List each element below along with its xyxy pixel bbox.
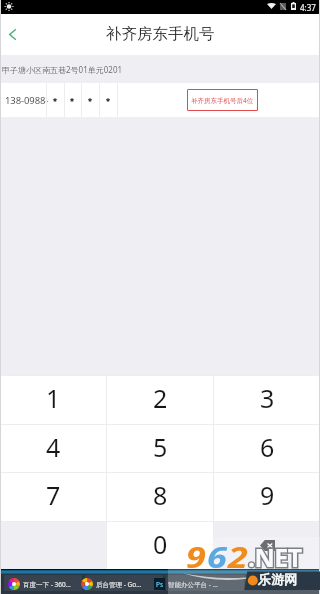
button[interactable]: 4 — [0, 425, 106, 472]
button[interactable]: 7 — [0, 473, 106, 521]
staticText: 8 — [153, 478, 168, 512]
staticText: 9 — [186, 538, 206, 576]
button[interactable]: 8 — [107, 473, 213, 521]
button[interactable]: 9 — [214, 473, 320, 521]
button[interactable]: Back — [0, 14, 32, 55]
staticText: 9 — [260, 478, 275, 512]
staticText: .NET — [248, 540, 302, 574]
staticText: 4 — [46, 430, 61, 464]
staticText: 智能办公平台 - ... — [168, 580, 218, 589]
button[interactable] — [63, 83, 81, 117]
button[interactable] — [166, 575, 244, 591]
staticText: 2 — [228, 538, 248, 576]
staticText: 3 — [260, 381, 275, 415]
button[interactable] — [46, 83, 64, 117]
button[interactable]: 5 — [107, 425, 213, 472]
button[interactable]: 2 — [107, 376, 213, 424]
staticText: 4:37 — [300, 2, 316, 13]
staticText: 2 — [153, 381, 168, 415]
staticText: 0 — [153, 527, 168, 561]
button[interactable]: 1 — [0, 376, 106, 424]
staticText: 138-0988- — [5, 94, 49, 107]
staticText: 甲子塘小区南五巷2号01单元0201 — [2, 64, 123, 75]
staticText: 补齐房东手机号后4位 — [191, 96, 254, 105]
staticText: 百度一下 - 360... — [23, 580, 71, 589]
button[interactable]: 0 — [107, 522, 213, 569]
button[interactable]: 3 — [214, 376, 320, 424]
button[interactable] — [4, 575, 82, 591]
staticText: 6 — [260, 430, 275, 464]
button[interactable] — [85, 575, 163, 591]
staticText: 乐游网 — [258, 571, 297, 587]
button[interactable]: 补齐房东手机号后4位 — [187, 89, 258, 111]
staticText: 补齐房东手机号 — [106, 24, 215, 44]
button[interactable]: 6 — [214, 425, 320, 472]
staticText: 6 — [207, 538, 227, 576]
button[interactable]: Delete — [214, 522, 320, 569]
staticText: 后台管理 - Go... — [96, 580, 142, 589]
staticText: 1 — [46, 381, 61, 415]
staticText: .NET — [248, 540, 302, 574]
staticText: Ps — [156, 580, 164, 589]
staticText: 5 — [153, 430, 168, 464]
staticText: 7 — [46, 478, 61, 512]
button[interactable] — [81, 83, 99, 117]
button[interactable] — [99, 83, 117, 117]
